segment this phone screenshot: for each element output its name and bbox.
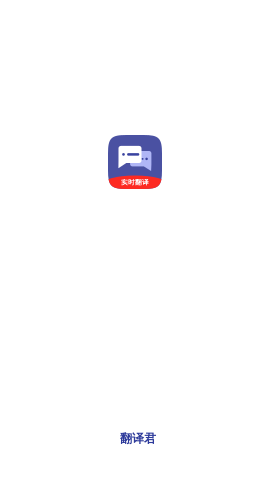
staticText: 翻译君 [120,431,156,446]
staticText: 实时翻译 [121,178,149,186]
